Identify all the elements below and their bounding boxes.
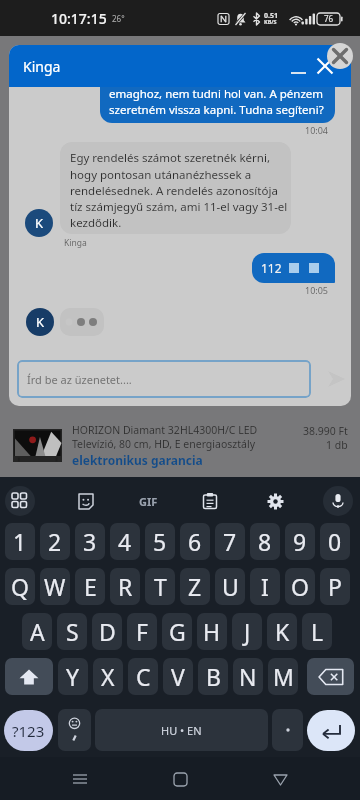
staticText: 2 <box>48 526 62 557</box>
staticText: Kinga <box>23 57 61 76</box>
button[interactable]: Stickers <box>70 486 100 516</box>
staticText: R <box>118 571 133 602</box>
staticText: 7 <box>223 526 237 557</box>
button[interactable]: Q <box>5 568 35 605</box>
button[interactable]: R <box>110 568 140 605</box>
staticText: ?123 <box>12 721 45 741</box>
staticText: S <box>66 616 79 647</box>
staticText: 10:04 <box>305 124 329 136</box>
staticText: GIF <box>139 494 158 509</box>
button[interactable]: Z <box>180 568 210 605</box>
button[interactable]: Close <box>327 43 353 69</box>
staticText: K <box>275 616 290 647</box>
button[interactable]: 8 <box>250 523 280 560</box>
button[interactable]: HORIZON Diamant 32HL4300H/C LED <box>0 36 360 477</box>
button[interactable]: 5 <box>145 523 175 560</box>
button[interactable]: X <box>93 658 123 695</box>
button[interactable]: K <box>267 613 297 650</box>
staticText: J <box>244 616 251 647</box>
staticText: K <box>35 214 44 232</box>
button[interactable]: S <box>57 613 87 650</box>
staticText: A <box>30 616 45 647</box>
button[interactable]: A <box>22 613 52 650</box>
button[interactable]: Home <box>160 759 200 799</box>
button[interactable]: 7 <box>215 523 245 560</box>
button[interactable]: Kinga <box>9 45 351 87</box>
staticText: W <box>44 571 66 602</box>
staticText: C <box>136 661 151 692</box>
button[interactable]: O <box>285 568 315 605</box>
button[interactable]: W <box>40 568 70 605</box>
staticText: 26° <box>112 13 125 24</box>
button[interactable]: Emoji and comma <box>58 709 91 751</box>
button[interactable]: H <box>197 613 227 650</box>
button[interactable]: 2 <box>40 523 70 560</box>
staticText: N <box>239 661 257 692</box>
button[interactable]: ?123 <box>4 710 53 751</box>
staticText: V <box>171 661 185 692</box>
button[interactable]: N <box>233 658 263 695</box>
staticText: X <box>101 661 115 692</box>
button[interactable]: L <box>302 613 332 650</box>
button[interactable]: 4 <box>110 523 140 560</box>
button[interactable]: Enter <box>307 710 355 751</box>
button[interactable]: Clipboard <box>195 486 225 516</box>
button[interactable]: Close window <box>312 53 338 79</box>
staticText: 1 <box>13 526 27 557</box>
staticText: 10:05 <box>305 284 329 296</box>
staticText: G <box>169 616 186 647</box>
button[interactable]: V <box>163 658 193 695</box>
button[interactable]: I <box>250 568 280 605</box>
button[interactable]: Back <box>260 759 300 799</box>
button[interactable]: 1 <box>5 523 35 560</box>
staticText: 0.51 <box>264 11 278 21</box>
button[interactable]: 9 <box>285 523 315 560</box>
button[interactable]: GIF <box>133 486 163 516</box>
staticText: 9 <box>293 526 307 557</box>
button[interactable]: Shift <box>5 658 53 695</box>
button[interactable]: 3 <box>75 523 105 560</box>
button[interactable]: T <box>145 568 175 605</box>
staticText: Írd be az üzenetet.... <box>27 372 132 387</box>
button[interactable]: Period <box>272 709 303 751</box>
staticText: 10:17:15 <box>51 9 107 28</box>
button[interactable]: P <box>320 568 350 605</box>
staticText: M <box>273 661 294 692</box>
button[interactable]: Voice input <box>323 486 353 516</box>
staticText: 1 db <box>326 438 348 452</box>
button[interactable]: Recent apps <box>60 759 100 799</box>
staticText: F <box>136 616 148 647</box>
staticText: U <box>222 571 239 602</box>
button[interactable]: E <box>75 568 105 605</box>
button[interactable]: Írd be az üzenetet.... <box>17 360 311 398</box>
button[interactable]: Y <box>58 658 88 695</box>
button[interactable]: HU • EN <box>95 709 268 751</box>
staticText: 112 <box>261 260 282 276</box>
button[interactable]: Minimize <box>281 54 315 80</box>
button[interactable]: C <box>128 658 158 695</box>
button[interactable]: M <box>268 658 298 695</box>
button[interactable]: D <box>92 613 122 650</box>
button[interactable]: F <box>127 613 157 650</box>
staticText: HU • EN <box>161 723 202 738</box>
staticText: E <box>84 571 97 602</box>
button[interactable]: B <box>198 658 228 695</box>
button[interactable]: 0 <box>320 523 350 560</box>
staticText: KB/S <box>264 18 277 25</box>
button[interactable]: Keyboard apps <box>5 486 35 516</box>
staticText: 8 <box>258 526 272 557</box>
button[interactable]: J <box>232 613 262 650</box>
button[interactable]: G <box>162 613 192 650</box>
staticText: 76 <box>324 13 334 24</box>
button[interactable]: U <box>215 568 245 605</box>
staticText: elektronikus garancia <box>72 452 203 468</box>
staticText: B <box>206 661 221 692</box>
staticText: T <box>154 571 167 602</box>
staticText: D <box>99 616 116 647</box>
staticText: 4 <box>118 526 132 557</box>
staticText: HORIZON Diamant 32HL4300H/C LED <box>72 423 258 437</box>
button[interactable]: 6 <box>180 523 210 560</box>
button[interactable]: Backspace <box>307 658 354 695</box>
button[interactable]: Settings <box>260 486 290 516</box>
